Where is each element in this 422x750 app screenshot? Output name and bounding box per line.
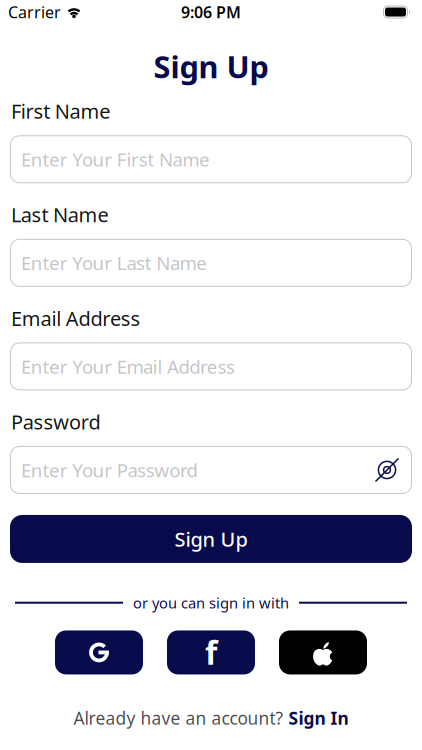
staticText: Enter Your Email Address	[21, 354, 235, 379]
button[interactable]: Show Password	[374, 457, 400, 483]
staticText: First Name	[11, 98, 110, 124]
staticText: 9:06 PM	[181, 1, 241, 23]
staticText: Sign Up	[174, 526, 247, 552]
button[interactable]: Sign in with Google	[55, 630, 143, 674]
staticText: Already have an account?	[73, 706, 283, 729]
staticText: or you can sign in with	[133, 593, 289, 612]
staticText: Password	[11, 408, 101, 435]
staticText: Enter Your Last Name	[21, 250, 207, 275]
button[interactable]: Sign in with Facebook	[167, 630, 255, 674]
staticText: Last Name	[11, 201, 108, 228]
staticText: Carrier	[8, 1, 61, 23]
staticText: Email Address	[11, 305, 141, 331]
staticText: Sign In	[288, 706, 348, 729]
staticText: Enter Your Password	[21, 458, 198, 482]
staticText: Sign Up	[153, 46, 268, 87]
button[interactable]: Sign in with Apple	[279, 630, 367, 674]
button[interactable]: Sign Up	[10, 515, 412, 563]
staticText: Enter Your First Name	[21, 147, 210, 172]
button[interactable]: Sign In	[288, 706, 348, 729]
staticText: f	[205, 631, 217, 674]
